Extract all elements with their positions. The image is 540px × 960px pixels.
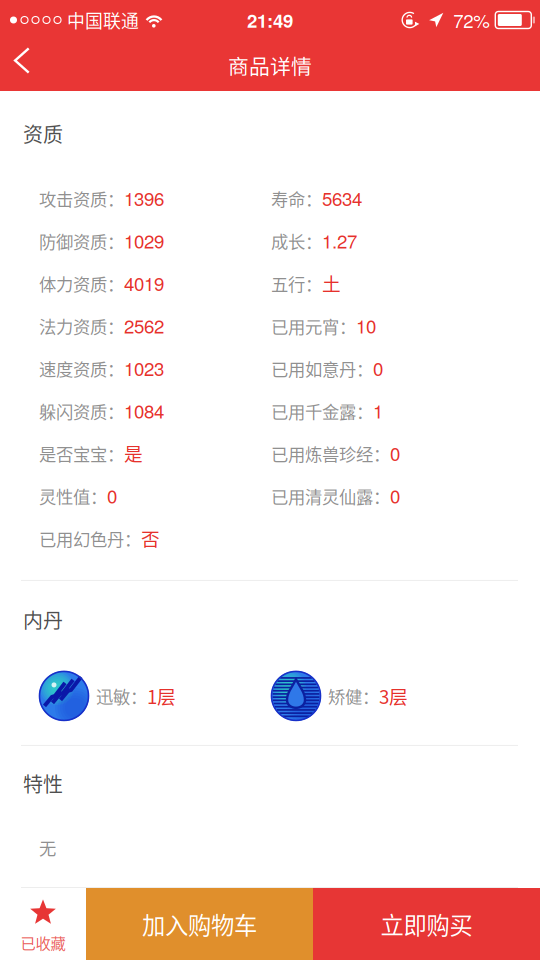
staticText: 10	[356, 312, 376, 339]
staticText: 已用幻色丹	[39, 526, 124, 551]
staticText: 无	[39, 835, 56, 860]
staticText: 已用炼兽珍经	[271, 441, 373, 466]
staticText: 1084	[124, 397, 164, 424]
staticText: 五行	[271, 271, 305, 296]
staticText: 0	[390, 482, 400, 509]
staticText: ：	[90, 483, 107, 508]
staticText: 72%	[453, 7, 490, 33]
staticText: ：	[107, 356, 124, 381]
staticText: 迅敏	[96, 683, 130, 708]
staticText: 是	[124, 439, 143, 466]
staticText: ：	[107, 398, 124, 423]
staticText: ：	[373, 483, 390, 508]
staticText: 加入购物车	[142, 907, 257, 941]
staticText: ：	[362, 683, 379, 708]
staticText: 速度资质	[39, 356, 107, 381]
button[interactable]: 已收藏	[0, 888, 86, 960]
staticText: ：	[107, 228, 124, 253]
staticText: ：	[339, 313, 356, 338]
staticText: 体力资质	[39, 271, 107, 296]
staticText: 1029	[124, 227, 164, 254]
staticText: 防御资质	[39, 228, 107, 253]
staticText: 3层	[379, 682, 408, 709]
staticText: 已用清灵仙露	[271, 483, 373, 508]
staticText: ：	[107, 271, 124, 296]
staticText: 攻击资质	[39, 186, 107, 211]
staticText: 特性	[23, 769, 63, 798]
staticText: 灵性值	[39, 483, 90, 508]
staticText: 矫健	[328, 683, 362, 708]
staticText: 1396	[124, 185, 164, 211]
staticText: 已用如意丹	[271, 356, 356, 381]
staticText: 4019	[124, 270, 164, 296]
staticText: ：	[305, 228, 322, 253]
staticText: 1层	[147, 682, 176, 709]
staticText: 内丹	[23, 605, 63, 634]
staticText: 0	[373, 355, 383, 381]
staticText: 寿命	[271, 186, 305, 211]
button[interactable]: 加入购物车	[86, 888, 313, 960]
staticText: 0	[107, 482, 117, 509]
staticText: 是否宝宝	[39, 441, 107, 466]
staticText: 1	[373, 397, 383, 424]
staticText: ：	[124, 526, 141, 551]
staticText: 成长	[271, 228, 305, 253]
staticText: ：	[305, 186, 322, 211]
staticText: 已收藏	[20, 931, 65, 954]
staticText: ：	[356, 398, 373, 423]
staticText: 法力资质	[39, 313, 107, 338]
button[interactable]: 立即购买	[313, 888, 540, 960]
staticText: 1023	[124, 355, 164, 381]
staticText: ：	[373, 441, 390, 466]
staticText: ：	[305, 271, 322, 296]
staticText: 中国联通	[67, 7, 139, 33]
staticText: 0	[390, 440, 400, 466]
staticText: 2562	[124, 312, 164, 339]
staticText: 5634	[322, 185, 362, 211]
staticText: 躲闪资质	[39, 398, 107, 423]
staticText: 1.27	[322, 227, 357, 254]
staticText: ：	[356, 356, 373, 381]
staticText: 立即购买	[380, 907, 472, 941]
staticText: 已用元宵	[271, 313, 339, 338]
staticText: 商品详情	[228, 50, 312, 80]
button[interactable]: 返回	[0, 35, 44, 96]
staticText: ：	[107, 441, 124, 466]
staticText: 资质	[23, 119, 63, 148]
staticText: ：	[130, 683, 147, 708]
staticText: 已用千金露	[271, 398, 356, 423]
staticText: ：	[107, 313, 124, 338]
staticText: 否	[141, 524, 160, 551]
staticText: 21:49	[247, 7, 293, 33]
staticText: 土	[322, 269, 341, 296]
staticText: ：	[107, 186, 124, 211]
